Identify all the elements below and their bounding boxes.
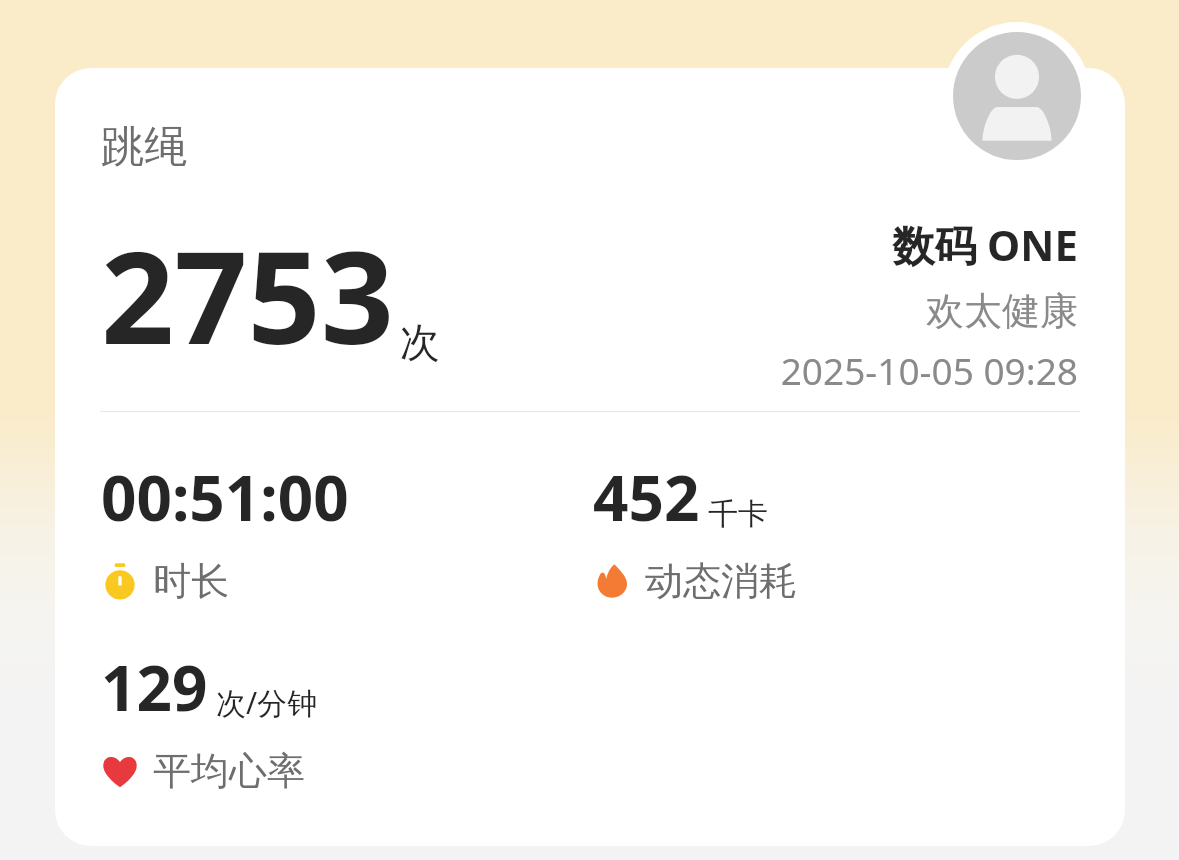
staticText: 00:51:00 [101, 455, 349, 539]
staticText: 跳绳 [101, 120, 187, 174]
button[interactable]: 452 [593, 455, 1085, 605]
button[interactable]: 跳绳 [55, 68, 1125, 846]
staticText: 欢太健康 [926, 287, 1078, 335]
staticText: 动态消耗 [645, 557, 797, 605]
staticText: 2025-10-05 09:28 [780, 345, 1078, 395]
staticText: 千卡 [708, 495, 768, 533]
staticText: 平均心率 [153, 747, 305, 795]
button[interactable]: Profile [943, 22, 1091, 170]
button[interactable]: 129 [101, 645, 593, 795]
staticText: 452 [593, 455, 700, 539]
staticText: 数码 ONE [892, 216, 1078, 273]
button[interactable]: 00:51:00 [101, 455, 593, 605]
staticText: 129 [101, 645, 208, 729]
staticText: 次 [400, 317, 440, 367]
staticText: 时长 [153, 557, 229, 605]
staticText: 次/分钟 [216, 682, 318, 723]
staticText: 2753 [101, 207, 394, 381]
